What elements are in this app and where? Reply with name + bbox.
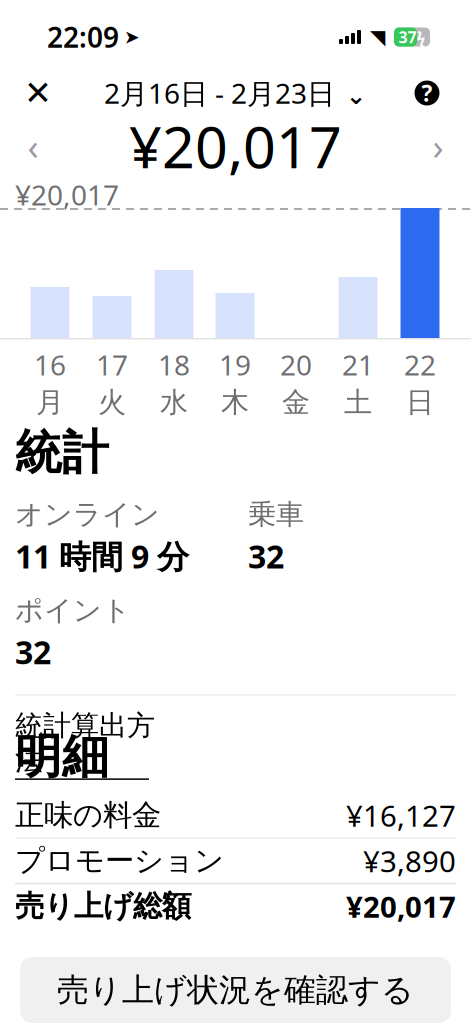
- button[interactable]: 前の週: [8, 120, 58, 172]
- staticText: ›: [432, 122, 443, 170]
- staticText: ?: [421, 78, 432, 108]
- staticText: 火: [98, 385, 126, 420]
- staticText: ⌄: [346, 82, 366, 109]
- staticText: 売り上げ総額: [15, 888, 191, 924]
- button[interactable]: 売り上げ状況を確認する: [20, 957, 451, 1023]
- staticText: 統計算出方法: [15, 709, 155, 777]
- staticText: ¥20,017: [129, 108, 342, 184]
- staticText: 16: [34, 346, 66, 383]
- staticText: ポイント: [15, 593, 131, 628]
- staticText: 水: [160, 385, 188, 420]
- staticText: 18: [158, 346, 190, 383]
- staticText: ¥20,017: [15, 176, 119, 213]
- staticText: 32: [248, 535, 284, 577]
- button[interactable]: 次の週: [413, 120, 463, 172]
- staticText: 20: [280, 346, 312, 383]
- staticText: 乗車: [248, 497, 304, 532]
- staticText: ➤: [124, 26, 140, 48]
- staticText: 22: [404, 346, 436, 383]
- staticText: ϟ: [416, 26, 425, 48]
- staticText: 2月16日 - 2月23日: [104, 74, 335, 112]
- button[interactable]: 2月16日 - 2月23日: [100, 66, 370, 120]
- staticText: オンライン: [15, 497, 160, 532]
- staticText: 正味の料金: [15, 797, 161, 833]
- button[interactable]: 閉じる: [11, 66, 65, 120]
- button[interactable]: ヘルプ: [401, 66, 453, 120]
- staticText: 日: [406, 385, 434, 420]
- staticText: 19: [219, 346, 251, 383]
- staticText: 32: [15, 631, 51, 673]
- staticText: 金: [282, 385, 310, 420]
- staticText: 明細: [15, 728, 109, 785]
- staticText: ¥20,017: [346, 887, 456, 926]
- staticText: 11 時間 9 分: [15, 535, 189, 577]
- staticText: 統計: [15, 424, 109, 481]
- staticText: ✕: [24, 74, 52, 112]
- staticText: 17: [96, 346, 128, 383]
- staticText: 22:09: [47, 18, 119, 56]
- staticText: 21: [342, 346, 374, 383]
- staticText: 土: [344, 385, 372, 420]
- staticText: 37: [398, 26, 416, 48]
- staticText: ‹: [27, 122, 38, 170]
- staticText: 月: [36, 385, 64, 420]
- staticText: 木: [221, 385, 249, 420]
- staticText: ◥: [370, 26, 385, 48]
- staticText: ¥16,127: [346, 796, 456, 835]
- staticText: プロモーション: [15, 843, 224, 879]
- staticText: ¥3,890: [363, 841, 456, 880]
- staticText: 売り上げ状況を確認する: [57, 970, 414, 1010]
- button[interactable]: 統計算出方法: [15, 709, 175, 780]
